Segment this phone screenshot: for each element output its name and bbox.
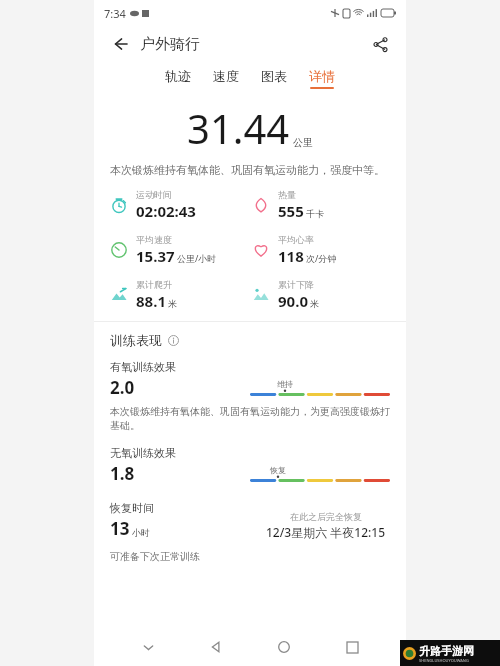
staticText: 米 (168, 298, 177, 309)
staticText: 升路手游网 (419, 644, 474, 658)
button[interactable]: 轨迹 (154, 64, 202, 93)
staticText: 训练表现 (110, 332, 162, 348)
staticText: 无氧训练效果 (110, 446, 176, 460)
staticText: 90.0 (278, 291, 308, 311)
staticText: 13 (110, 517, 130, 540)
staticText: 本次锻炼维持有氧体能、巩固有氧运动能力，强度中等。 (110, 163, 390, 177)
staticText: 维持 (277, 379, 293, 389)
staticText: 千卡 (306, 208, 324, 219)
button[interactable]: 平均速度 (108, 234, 250, 266)
staticText: 在此之后完全恢复 (290, 511, 362, 522)
button[interactable]: 训练表现 (110, 332, 180, 348)
button[interactable]: 运动时间 (108, 189, 250, 221)
staticText: 轨迹 (165, 68, 191, 84)
staticText: 运动时间 (136, 189, 172, 200)
button[interactable]: 速度 (202, 64, 250, 93)
button[interactable]: 累计爬升 (108, 279, 250, 311)
button[interactable]: 图表 (250, 64, 298, 93)
staticText: 88.1 (136, 291, 166, 311)
staticText: 555 (278, 201, 304, 221)
staticText: 公里 (293, 136, 313, 149)
staticText: 米 (310, 298, 319, 309)
button[interactable]: Home (270, 633, 298, 661)
staticText: 118 (278, 246, 304, 266)
staticText: 恢复 (270, 465, 286, 475)
button[interactable]: 详情 (298, 64, 346, 93)
button[interactable]: 累计下降 (250, 279, 392, 311)
staticText: 1.8 (110, 462, 135, 485)
staticText: 本次锻炼维持有氧体能、巩固有氧运动能力，为更高强度锻炼打基础。 (110, 405, 390, 432)
staticText: 累计爬升 (136, 279, 172, 290)
staticText: 2.0 (110, 376, 135, 399)
staticText: 7:34 (104, 6, 126, 21)
button[interactable]: Back (106, 30, 134, 58)
staticText: 户外骑行 (140, 35, 200, 54)
staticText: SHENGLUSHOUYOUWANG (419, 658, 469, 663)
staticText: 有氧训练效果 (110, 360, 176, 374)
staticText: 小时 (132, 527, 150, 538)
staticText: 图表 (261, 68, 287, 84)
button[interactable]: Collapse (134, 633, 162, 661)
staticText: 15.37 (136, 246, 175, 266)
staticText: 速度 (213, 68, 239, 84)
button[interactable]: 热量 (250, 189, 392, 221)
button[interactable]: Share (366, 30, 394, 58)
staticText: 12/3星期六 半夜12:15 (266, 524, 386, 540)
staticText: 平均心率 (278, 234, 314, 245)
staticText: 恢复时间 (110, 501, 154, 515)
staticText: 累计下降 (278, 279, 314, 290)
button[interactable]: Back (202, 633, 230, 661)
staticText: 02:02:43 (136, 201, 196, 221)
staticText: 平均速度 (136, 234, 172, 245)
button[interactable]: 平均心率 (250, 234, 392, 266)
staticText: 31.44 (187, 101, 290, 155)
staticText: 热量 (278, 189, 296, 200)
button[interactable]: Recents (338, 633, 366, 661)
other: Info (166, 333, 180, 347)
staticText: 次/分钟 (306, 252, 337, 264)
staticText: 可准备下次正常训练 (110, 550, 200, 563)
staticText: 详情 (309, 68, 335, 84)
staticText: 公里/小时 (177, 252, 217, 264)
